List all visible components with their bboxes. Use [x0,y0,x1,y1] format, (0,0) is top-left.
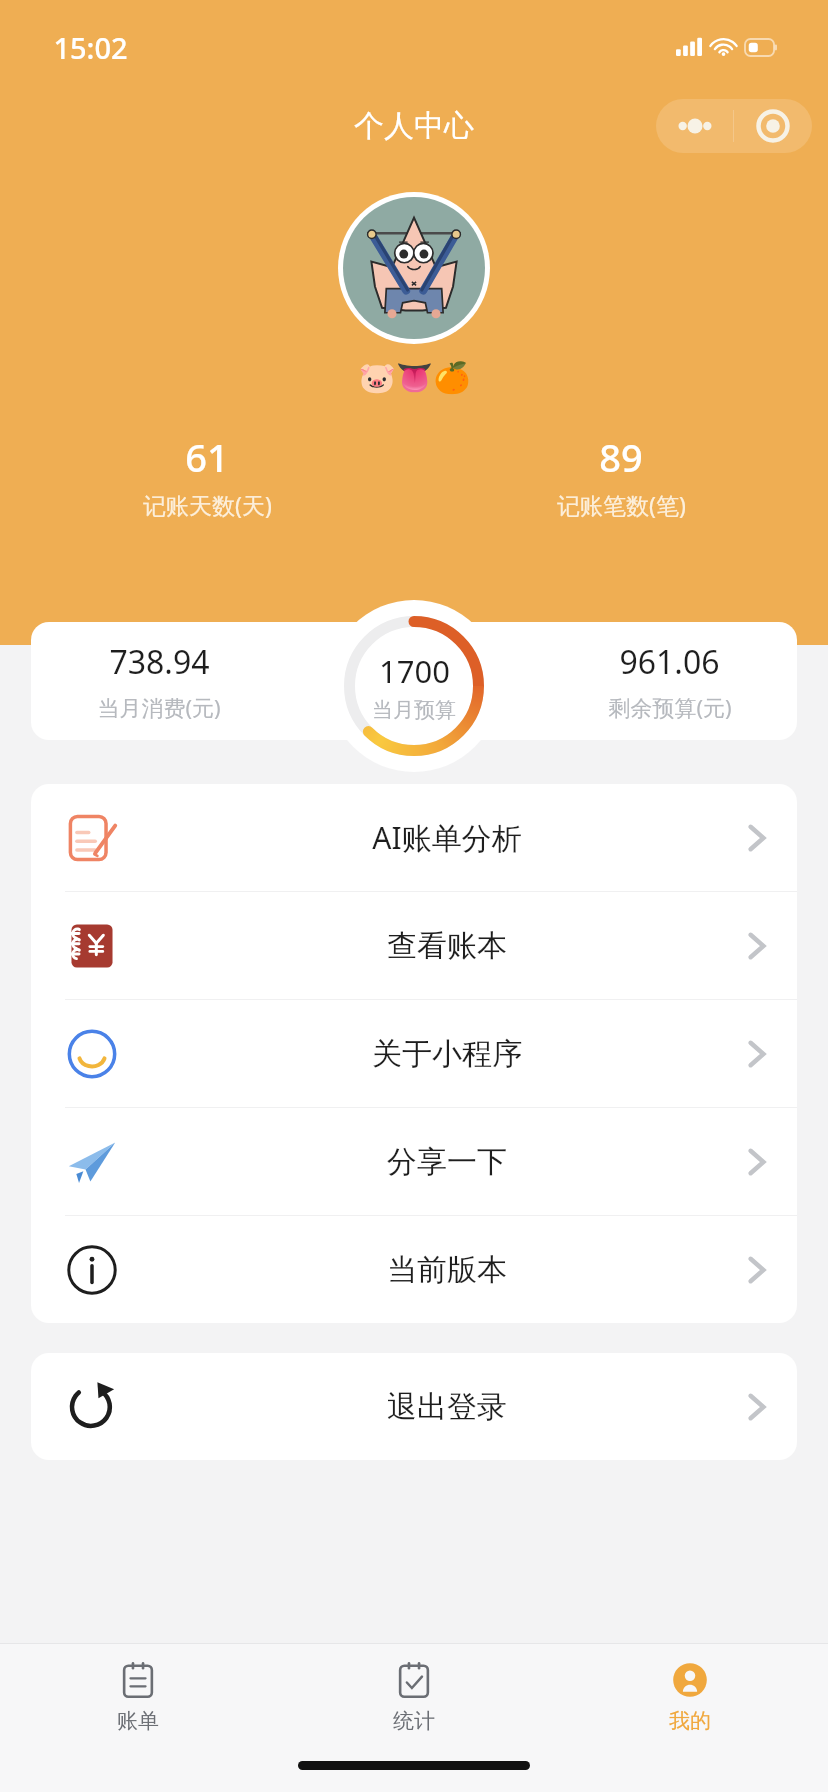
button[interactable]: 分享一下 [31,1108,797,1215]
button[interactable]: 1700 [328,600,500,772]
staticText: 账单 [117,1708,159,1734]
button[interactable]: 当前版本 [31,1216,797,1323]
staticText: 分享一下 [147,1143,747,1181]
staticText: 个人中心 [354,107,474,145]
button[interactable] [343,197,485,339]
staticText: 当月消费(元) [97,692,221,722]
button[interactable]: 账单 [0,1644,276,1748]
staticText: 🐷👅🍊 [358,360,471,395]
staticText: AI账单分析 [147,817,747,858]
staticText: 当前版本 [147,1251,747,1289]
button[interactable]: 89 [414,431,828,520]
staticText: 查看账本 [147,927,747,965]
button[interactable]: More [656,99,733,153]
staticText: 15:02 [53,28,128,67]
staticText: 退出登录 [147,1388,747,1426]
button[interactable]: AI账单分析 [31,784,797,891]
staticText: 738.94 [109,640,210,684]
staticText: 961.06 [619,640,720,684]
staticText: 当月预算 [372,697,456,723]
staticText: 剩余预算(元) [608,692,732,722]
button[interactable]: 查看账本 [31,892,797,999]
staticText: 1700 [379,650,450,692]
staticText: 统计 [393,1708,435,1734]
staticText: 关于小程序 [147,1035,747,1073]
button[interactable]: 738.94 [31,622,797,740]
staticText: 我的 [669,1708,711,1734]
staticText: 记账天数(天) [143,489,272,520]
staticText: 89 [599,431,643,483]
button[interactable]: 关于小程序 [31,1000,797,1107]
button[interactable]: 61 [0,431,414,520]
staticText: 记账笔数(笔) [557,489,686,520]
button[interactable]: Close [734,99,812,153]
button[interactable]: 退出登录 [31,1353,797,1460]
button[interactable]: 统计 [276,1644,552,1748]
button[interactable]: 我的 [552,1644,828,1748]
staticText: 61 [185,431,229,483]
